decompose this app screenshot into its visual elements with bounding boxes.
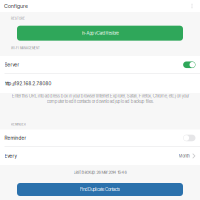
staticText: Month	[178, 153, 189, 159]
staticText: In-App vCard Restore	[81, 30, 118, 36]
button[interactable]: http://192.168.2.7:8080	[0, 74, 200, 93]
button[interactable]: Every	[0, 147, 200, 165]
button[interactable]: Reminder	[0, 129, 200, 146]
staticText: Every	[4, 153, 16, 159]
staticText: Server	[4, 62, 19, 68]
staticText: WI-FI MANAGEMENT	[11, 47, 40, 50]
staticText: RESTORE	[11, 17, 25, 21]
staticText: http://192.168.2.7:8080	[4, 81, 51, 86]
staticText: Enter this URL into address box in your …	[11, 93, 188, 104]
staticText: Last Backup: 26 Mar 2014 15:46	[73, 170, 126, 175]
staticText: Reminder	[4, 135, 26, 141]
staticText: Find Duplicate Contacts	[80, 187, 120, 192]
button[interactable]: Find Duplicate Contacts	[17, 183, 183, 196]
button[interactable]: Server	[0, 56, 200, 73]
staticText: REMINDER	[11, 123, 26, 126]
button[interactable]: In-App vCard Restore	[17, 26, 183, 41]
button[interactable]: More options	[188, 0, 196, 12]
staticText: Configure	[4, 3, 28, 9]
